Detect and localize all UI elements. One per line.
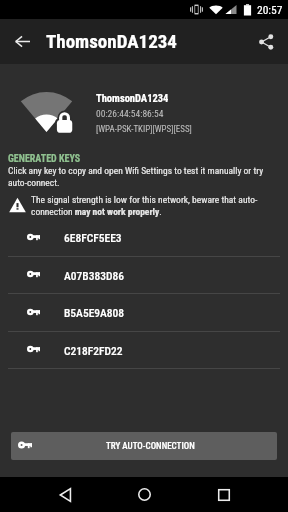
- staticText: [WPA-PSK-TKIP][WPS][ESS]: [96, 124, 192, 135]
- button[interactable]: Navigate up: [0, 19, 45, 64]
- staticText: 20:57: [257, 3, 283, 16]
- staticText: 6E8FCF5EE3: [64, 231, 122, 244]
- staticText: 00:26:44:54:86:54: [96, 108, 164, 119]
- button[interactable]: Recent apps: [204, 477, 244, 512]
- button[interactable]: C218F2FD22: [0, 332, 288, 368]
- button[interactable]: A07B383D86: [0, 257, 288, 293]
- staticText: B5A5E9A808: [64, 306, 125, 319]
- button[interactable]: TRY AUTO-CONNECTION: [11, 432, 277, 460]
- button[interactable]: Home: [124, 477, 164, 512]
- button[interactable]: B5A5E9A808: [0, 294, 288, 331]
- staticText: GENERATED KEYS: [8, 153, 81, 165]
- button[interactable]: Share: [243, 19, 288, 64]
- button[interactable]: 6E8FCF5EE3: [0, 219, 288, 256]
- staticText: TRY AUTO-CONNECTION: [106, 441, 195, 452]
- button[interactable]: Back: [45, 477, 85, 512]
- staticText: ThomsonDA1234: [96, 92, 169, 104]
- staticText: The signal strength is low for this netw…: [31, 194, 274, 217]
- staticText: ThomsonDA1234: [46, 30, 177, 52]
- staticText: Click any key to copy and open Wifi Sett…: [8, 165, 274, 188]
- staticText: C218F2FD22: [64, 344, 123, 357]
- staticText: A07B383D86: [64, 269, 124, 282]
